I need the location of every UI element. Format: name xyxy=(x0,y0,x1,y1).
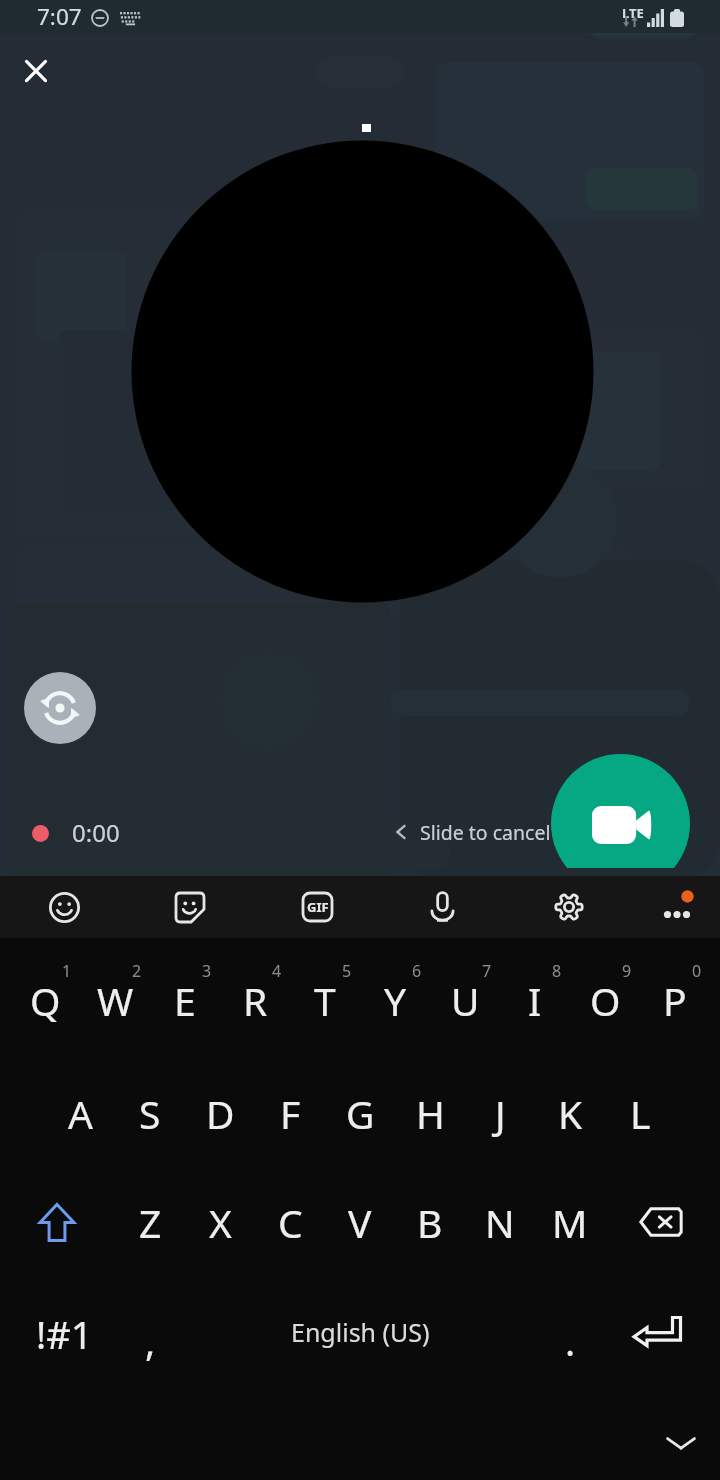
staticText: L xyxy=(630,1087,651,1140)
button[interactable]: 5 xyxy=(290,942,360,1042)
button[interactable]: M xyxy=(535,1172,605,1272)
button[interactable]: J xyxy=(465,1063,535,1163)
button[interactable]: A xyxy=(45,1063,115,1163)
staticText: 7 xyxy=(482,960,492,982)
staticText: 6 xyxy=(412,960,422,982)
button[interactable]: 2 xyxy=(80,942,150,1042)
staticText: N xyxy=(485,1196,515,1249)
button[interactable]: G xyxy=(325,1063,395,1163)
button[interactable]: Record video message xyxy=(551,754,690,868)
staticText: Q xyxy=(30,974,61,1027)
button[interactable]: Backspace xyxy=(614,1172,708,1272)
button[interactable]: X xyxy=(185,1172,255,1272)
staticText: K xyxy=(558,1087,583,1140)
staticText: I xyxy=(528,974,542,1027)
button[interactable]: S xyxy=(115,1063,185,1163)
staticText: 0 xyxy=(692,960,702,982)
button[interactable]: Emoji xyxy=(24,876,104,938)
staticText: 3 xyxy=(202,960,212,982)
button[interactable]: 6 xyxy=(360,942,430,1042)
button[interactable]: , xyxy=(117,1291,183,1391)
staticText: X xyxy=(209,1196,232,1249)
button[interactable]: V xyxy=(325,1172,395,1272)
staticText: W xyxy=(97,974,134,1027)
button[interactable]: Slide to cancel xyxy=(390,808,551,856)
staticText: Y xyxy=(384,974,407,1027)
button[interactable]: 0 xyxy=(640,942,710,1042)
staticText: A xyxy=(68,1087,93,1140)
staticText: F xyxy=(280,1087,301,1140)
staticText: Slide to cancel xyxy=(420,819,551,846)
staticText: V xyxy=(348,1196,372,1249)
button[interactable]: K xyxy=(535,1063,605,1163)
staticText: T xyxy=(314,974,336,1027)
button[interactable]: 9 xyxy=(570,942,640,1042)
button[interactable]: H xyxy=(395,1063,465,1163)
button[interactable]: Voice input xyxy=(402,876,482,938)
button[interactable]: Close xyxy=(12,47,60,95)
button[interactable]: B xyxy=(395,1172,465,1272)
staticText: 0:00 xyxy=(72,816,120,849)
staticText: H xyxy=(416,1087,445,1140)
button[interactable]: GIF xyxy=(277,876,357,938)
staticText: LTE xyxy=(622,4,644,22)
button[interactable]: Shift xyxy=(10,1172,104,1272)
button[interactable]: Z xyxy=(115,1172,185,1272)
button[interactable]: . xyxy=(537,1291,603,1391)
staticText: C xyxy=(278,1196,303,1249)
staticText: D xyxy=(206,1087,235,1140)
button[interactable]: English (US) xyxy=(195,1282,525,1382)
staticText: B xyxy=(417,1196,443,1249)
button[interactable]: 1 xyxy=(10,942,80,1042)
staticText: 8 xyxy=(552,960,562,982)
staticText: U xyxy=(451,974,480,1027)
button[interactable]: F xyxy=(255,1063,325,1163)
staticText: M xyxy=(552,1196,588,1249)
button[interactable]: Stickers xyxy=(150,876,230,938)
staticText: 2 xyxy=(132,960,142,982)
staticText: G xyxy=(346,1087,375,1140)
button[interactable]: 8 xyxy=(500,942,570,1042)
staticText: . xyxy=(565,1315,576,1367)
staticText: 1 xyxy=(62,960,72,982)
button[interactable]: C xyxy=(255,1172,325,1272)
button[interactable]: Enter xyxy=(607,1286,707,1386)
button[interactable]: 3 xyxy=(150,942,220,1042)
button[interactable]: 4 xyxy=(220,942,290,1042)
staticText: !#1 xyxy=(36,1308,93,1360)
button[interactable]: Hide keyboard xyxy=(649,1411,713,1475)
staticText: O xyxy=(590,974,621,1027)
button[interactable]: N xyxy=(465,1172,535,1272)
staticText: 4 xyxy=(272,960,282,982)
button[interactable]: L xyxy=(605,1063,675,1163)
staticText: GIF xyxy=(307,898,329,916)
button[interactable]: Flip camera xyxy=(24,672,96,744)
staticText: , xyxy=(145,1315,156,1367)
staticText: 5 xyxy=(342,960,352,982)
button[interactable]: 7 xyxy=(430,942,500,1042)
button[interactable]: !#1 xyxy=(9,1284,119,1384)
button[interactable]: More options xyxy=(637,876,717,938)
staticText: P xyxy=(663,974,687,1027)
button[interactable]: D xyxy=(185,1063,255,1163)
staticText: E xyxy=(174,974,196,1027)
staticText: 9 xyxy=(622,960,632,982)
staticText: Z xyxy=(139,1196,162,1249)
staticText: R xyxy=(243,974,268,1027)
staticText: J xyxy=(495,1087,506,1140)
staticText: S xyxy=(139,1087,161,1140)
staticText: 7:07 xyxy=(37,1,82,32)
button[interactable]: Keyboard settings xyxy=(529,876,609,938)
staticText: English (US) xyxy=(291,1315,430,1349)
